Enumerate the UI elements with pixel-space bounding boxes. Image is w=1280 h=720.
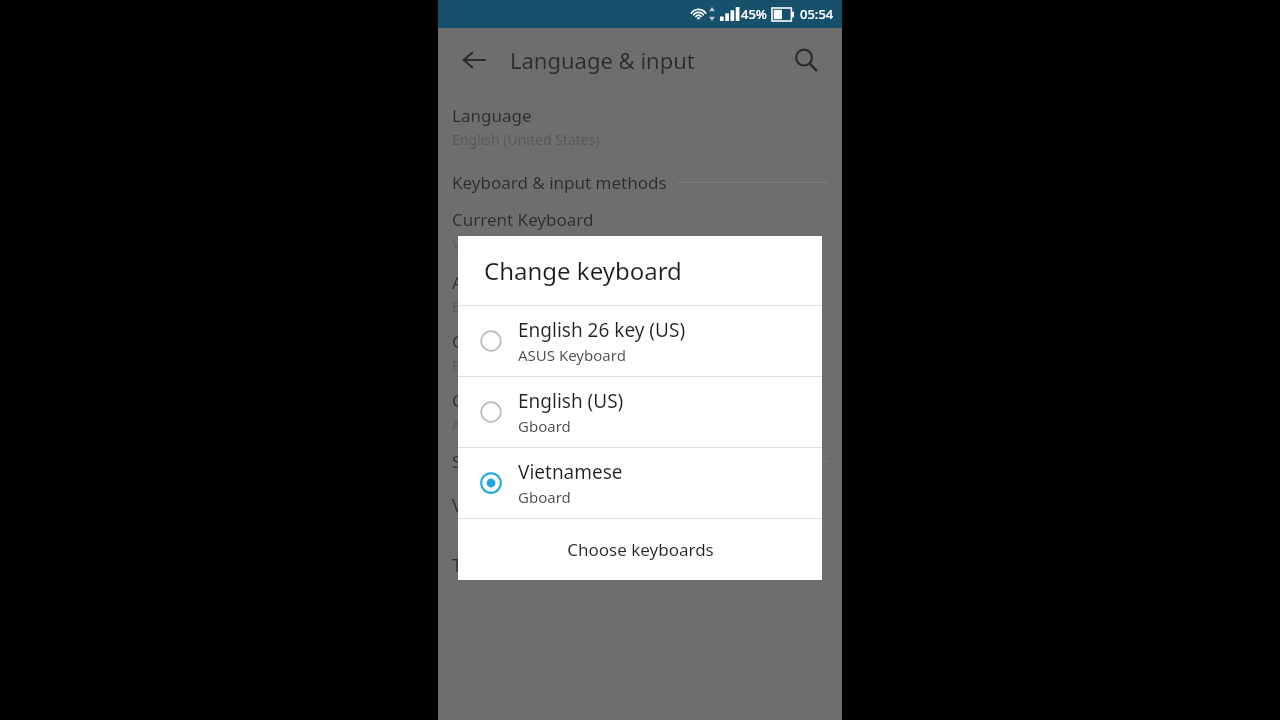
staticText: Keyboard & input methods — [452, 171, 667, 194]
staticText: English 26 key (US) — [518, 317, 686, 343]
staticText: Text-to-speech output — [452, 553, 638, 578]
staticText: English (US) — [518, 388, 624, 414]
staticText: 45% — [741, 5, 767, 23]
button[interactable]: Vietnamese — [458, 448, 822, 518]
button[interactable]: Voice input — [438, 493, 842, 518]
staticText: Vietnamese — [518, 459, 623, 485]
staticText: Choose keyboards — [567, 538, 714, 561]
button[interactable]: Back — [452, 38, 496, 82]
staticText: Current Keyboard — [452, 208, 594, 231]
button[interactable]: ASUS Keyboard — [438, 271, 842, 316]
staticText: Speech — [452, 450, 510, 473]
button[interactable]: Google voice typing — [438, 389, 842, 434]
staticText: Language — [452, 104, 532, 127]
button[interactable]: Gboard — [438, 330, 842, 375]
staticText: Vietnamese - Gboard — [452, 234, 591, 253]
button[interactable]: Text-to-speech output — [438, 553, 842, 578]
button[interactable]: Search — [784, 38, 828, 82]
button[interactable]: English (US) — [458, 377, 822, 447]
staticText: English (United States) — [452, 130, 600, 149]
staticText: Gboard — [518, 487, 571, 507]
staticText: English (US) — [452, 356, 530, 375]
staticText: ASUS Keyboard — [518, 345, 626, 365]
staticText: Change keyboard — [484, 254, 682, 287]
staticText: Voice input — [452, 493, 546, 518]
button[interactable]: Choose keyboards — [458, 519, 822, 580]
staticText: 05:54 — [800, 5, 834, 23]
button[interactable]: Current Keyboard — [438, 208, 842, 253]
button[interactable]: Language — [438, 104, 842, 149]
staticText: Gboard — [452, 330, 512, 353]
staticText: Language & input — [510, 45, 695, 75]
staticText: Automatic — [452, 415, 520, 434]
staticText: Gboard — [518, 416, 571, 436]
staticText: Google voice typing — [452, 389, 610, 412]
staticText: English (US) — [452, 297, 530, 316]
staticText: ASUS Keyboard — [452, 271, 575, 294]
button[interactable]: English 26 key (US) — [458, 306, 822, 376]
